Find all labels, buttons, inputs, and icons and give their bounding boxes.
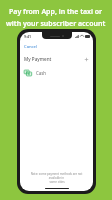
staticText: Pay from App, in the taxi or bbox=[9, 7, 103, 17]
button[interactable]: Cancel bbox=[20, 40, 93, 51]
staticText: some cities bbox=[49, 180, 65, 184]
staticText: with your subscriber account bbox=[6, 19, 106, 29]
button[interactable]: Cash bbox=[20, 66, 93, 80]
staticText: My Payment bbox=[24, 56, 52, 62]
button[interactable]: My Payment bbox=[20, 54, 93, 64]
other: Cash bbox=[24, 69, 32, 77]
staticText: 9:41 bbox=[24, 34, 32, 39]
other: Add payment method bbox=[84, 57, 89, 62]
staticText: Cash bbox=[36, 70, 47, 76]
staticText: Cancel bbox=[24, 44, 38, 50]
staticText: Note: some payment methods are not avail… bbox=[25, 172, 88, 180]
